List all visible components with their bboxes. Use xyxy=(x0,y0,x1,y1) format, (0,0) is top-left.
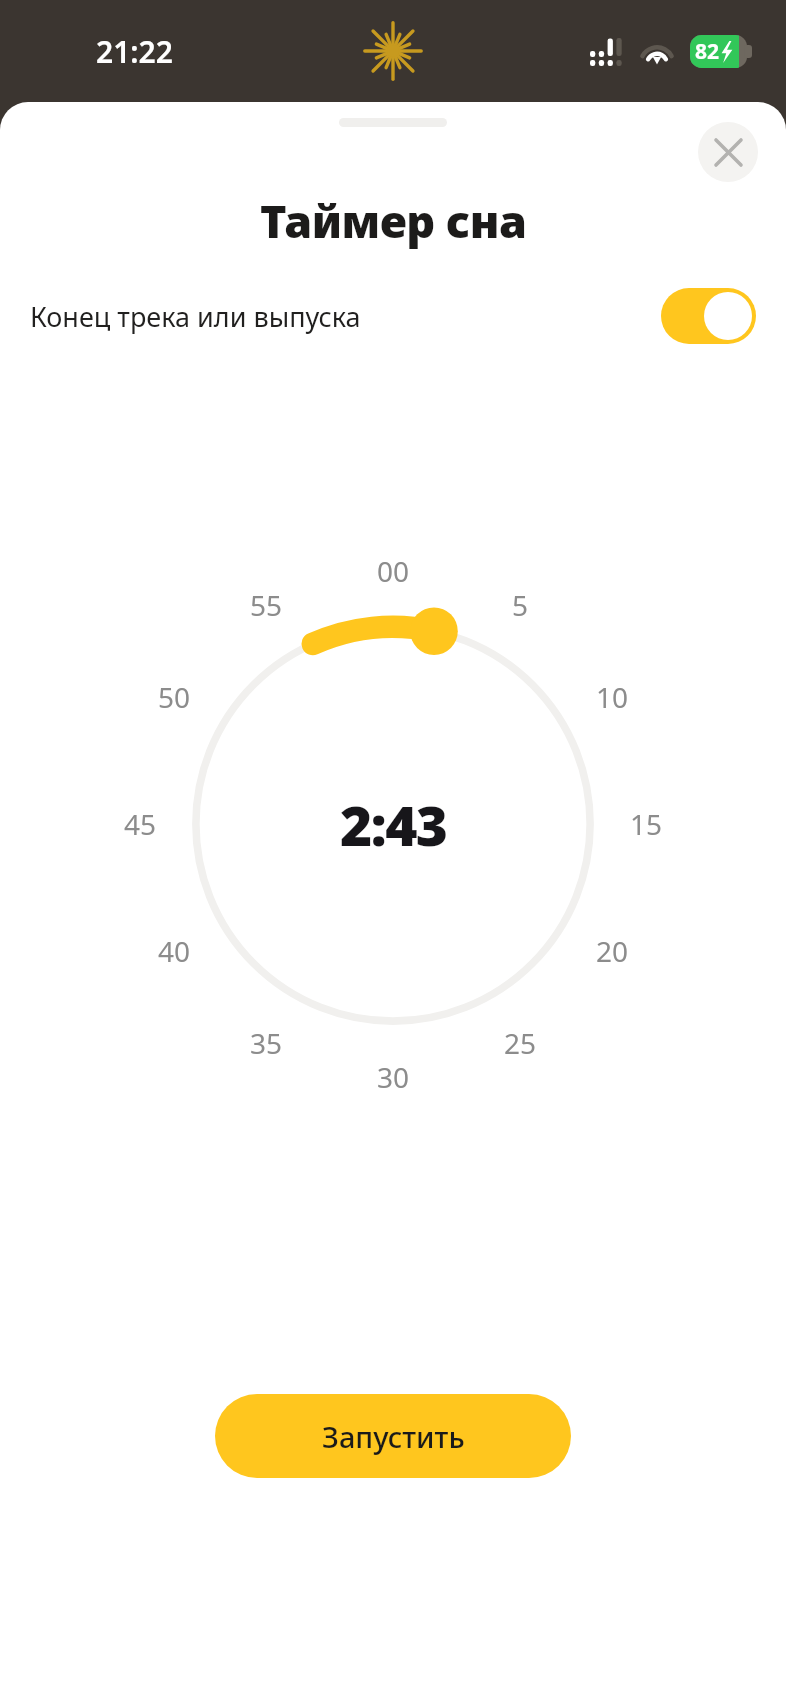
staticText: 10 xyxy=(596,678,629,716)
button[interactable]: Конец трека или выпуска включено xyxy=(661,288,756,344)
staticText: 45 xyxy=(124,805,157,843)
staticText: 21:22 xyxy=(96,31,173,72)
staticText: 20 xyxy=(596,932,629,970)
staticText: 2:43 xyxy=(340,787,447,862)
staticText: 30 xyxy=(377,1058,410,1096)
staticText: 15 xyxy=(630,805,663,843)
staticText: 82 xyxy=(695,37,720,66)
button[interactable]: Конец трека или выпуска xyxy=(0,284,786,348)
button[interactable]: Запустить xyxy=(215,1394,571,1478)
staticText: 55 xyxy=(250,586,283,624)
staticText: Запустить xyxy=(322,1417,465,1456)
staticText: Таймер сна xyxy=(260,190,527,251)
staticText: 5 xyxy=(512,586,529,624)
staticText: 50 xyxy=(158,678,191,716)
staticText: 00 xyxy=(377,552,410,590)
staticText: 25 xyxy=(504,1024,537,1062)
staticText: 35 xyxy=(250,1024,283,1062)
staticText: 40 xyxy=(158,932,191,970)
button[interactable]: Закрыть xyxy=(698,122,758,182)
staticText: Конец трека или выпуска xyxy=(30,298,361,335)
